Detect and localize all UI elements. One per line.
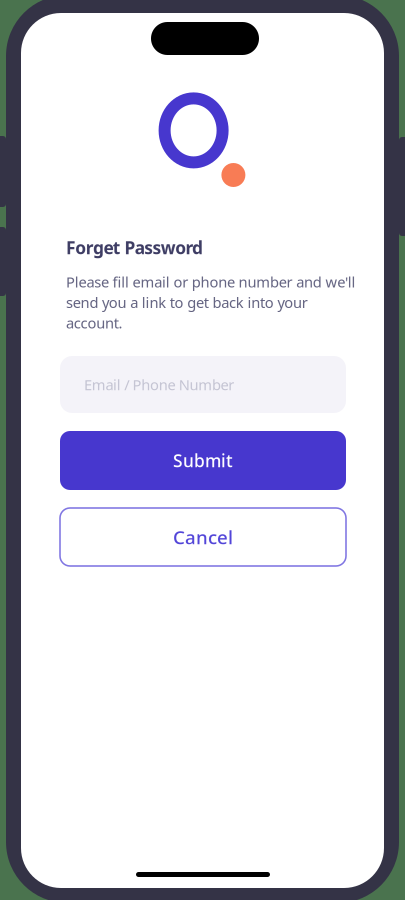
staticText: Submit: [173, 449, 233, 472]
button[interactable]: Cancel: [60, 508, 346, 566]
staticText: Cancel: [173, 525, 233, 549]
staticText: Forget Password: [66, 236, 203, 259]
staticText: Email / Phone Number: [84, 375, 234, 394]
button[interactable]: Email / Phone Number: [60, 356, 346, 413]
staticText: Please fill email or phone number and we…: [66, 272, 356, 332]
button[interactable]: Submit: [60, 431, 346, 490]
